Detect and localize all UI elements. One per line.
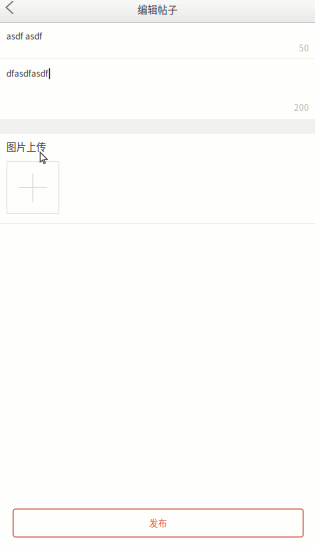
button[interactable]: Upload image (7, 161, 59, 213)
staticText: 发布 (149, 517, 167, 529)
button[interactable]: asdf asdf (0, 23, 315, 58)
staticText: 200 (294, 101, 309, 113)
button[interactable]: dfasdfasdf (0, 59, 315, 119)
staticText: asdf asdf (6, 29, 42, 42)
button[interactable]: 发布 (13, 509, 303, 537)
staticText: dfasdfasdf (6, 67, 48, 79)
staticText: 图片上传 (6, 139, 46, 154)
staticText: 50 (299, 42, 309, 54)
button[interactable]: Back (0, 0, 30, 23)
staticText: 编辑帖子 (137, 2, 177, 17)
